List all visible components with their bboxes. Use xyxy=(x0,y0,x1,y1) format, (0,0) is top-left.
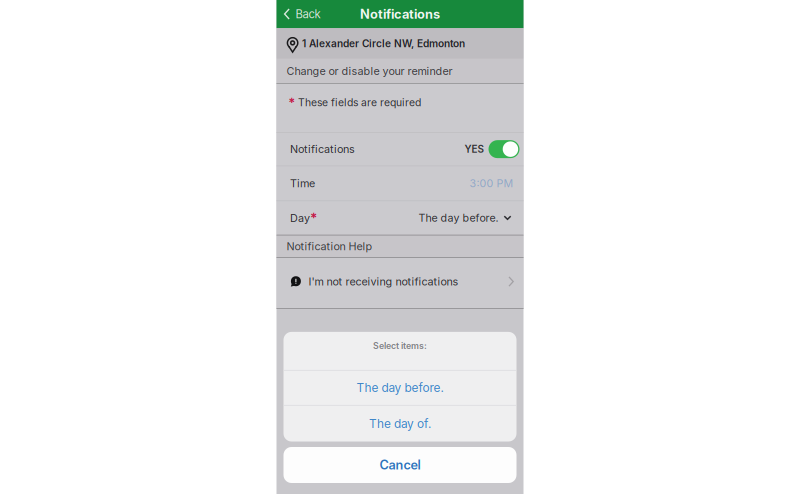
staticText: YES xyxy=(464,143,484,155)
staticText: 3:00 PM xyxy=(469,177,513,190)
staticText: The day of. xyxy=(369,416,431,431)
button[interactable]: Time xyxy=(276,166,523,200)
button[interactable]: The day before. xyxy=(283,371,516,405)
button[interactable]: Day xyxy=(276,201,523,235)
staticText: 1 Alexander Circle NW, Edmonton xyxy=(302,37,465,50)
staticText: The day before. xyxy=(356,381,443,395)
staticText: Time xyxy=(290,177,315,190)
staticText: Change or disable your reminder xyxy=(286,64,452,77)
button[interactable]: Cancel xyxy=(283,447,516,483)
staticText: * xyxy=(310,210,317,226)
staticText: Notifications xyxy=(290,143,355,156)
staticText: The day before. xyxy=(418,211,498,224)
staticText: * xyxy=(288,95,295,111)
staticText: These fields are required xyxy=(298,96,421,109)
button[interactable]: I'm not receiving notifications xyxy=(276,258,523,308)
staticText: Notifications xyxy=(360,6,440,22)
button[interactable]: Notifications xyxy=(276,133,523,165)
button[interactable]: Back xyxy=(276,0,329,28)
staticText: Notification Help xyxy=(286,240,372,253)
staticText: Back xyxy=(295,7,320,21)
staticText: I'm not receiving notifications xyxy=(308,275,458,288)
staticText: Day xyxy=(290,211,310,224)
staticText: Select items: xyxy=(373,341,427,351)
staticText: Cancel xyxy=(379,457,420,473)
button[interactable]: The day of. xyxy=(283,406,516,441)
